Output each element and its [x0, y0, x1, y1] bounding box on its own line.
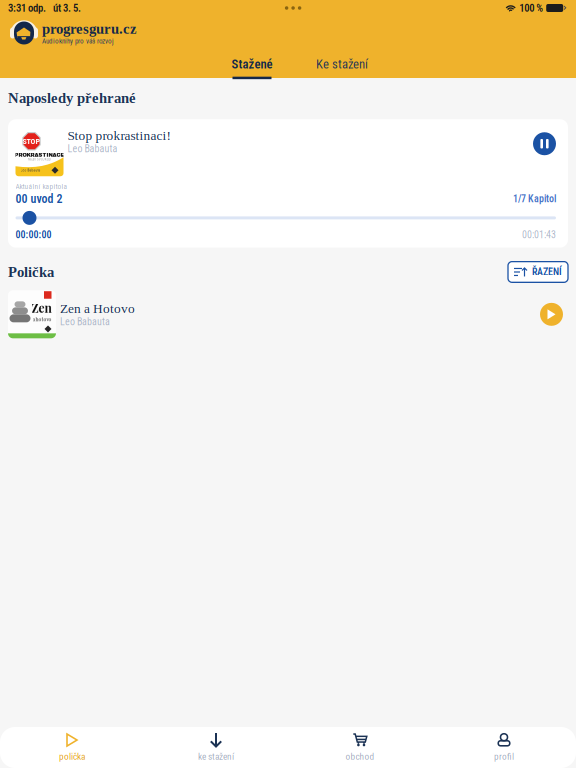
- button[interactable]: Ke stažení: [314, 50, 370, 78]
- staticText: NAJDI SVŮJ KLID: [28, 158, 51, 161]
- button[interactable]: profil: [432, 726, 576, 768]
- staticText: profil: [494, 751, 514, 762]
- button[interactable]: ŘAZENÍ: [508, 262, 568, 282]
- button[interactable]: Pozastavit: [533, 128, 556, 155]
- staticText: 1/7 Kapitol: [513, 193, 556, 205]
- button[interactable]: Stažené: [225, 50, 279, 78]
- staticText: Leo Babauta: [67, 143, 117, 155]
- staticText: Zen: [31, 300, 51, 316]
- staticText: Naposledy přehrané: [8, 90, 136, 106]
- staticText: Polička: [8, 264, 54, 280]
- staticText: ŘAZENÍ: [532, 266, 562, 278]
- button[interactable]: obchod: [288, 726, 432, 768]
- staticText: 00:00:00: [15, 229, 51, 241]
- staticText: polička: [59, 751, 85, 762]
- staticText: STOP: [22, 137, 40, 146]
- button[interactable]: Zen: [0, 290, 576, 338]
- staticText: 100 %: [519, 2, 543, 14]
- staticText: PROKRASTINACE: [14, 152, 64, 158]
- staticText: Leo Babauta: [20, 168, 40, 172]
- staticText: Stažené: [231, 57, 272, 72]
- staticText: Stop prokrastinaci!: [67, 128, 170, 143]
- button[interactable]: polička: [0, 726, 144, 768]
- staticText: Leo Babauta: [60, 316, 110, 328]
- staticText: Ke stažení: [316, 57, 368, 72]
- staticText: progresguru.cz: [42, 21, 137, 37]
- staticText: ke stažení: [198, 751, 234, 762]
- staticText: Aktuální kapitola: [15, 182, 67, 191]
- staticText: út 3. 5.: [53, 2, 81, 14]
- button[interactable]: ke stažení: [144, 726, 288, 768]
- staticText: 00 uvod 2: [15, 192, 62, 206]
- staticText: Audioknihy pro váš rozvoj: [42, 37, 114, 45]
- staticText: a hotovo: [32, 316, 51, 322]
- staticText: 00:01:43: [522, 229, 556, 241]
- staticText: obchod: [345, 751, 374, 762]
- staticText: Zen a Hotovo: [60, 301, 135, 316]
- staticText: 3:31 odp.: [8, 2, 46, 14]
